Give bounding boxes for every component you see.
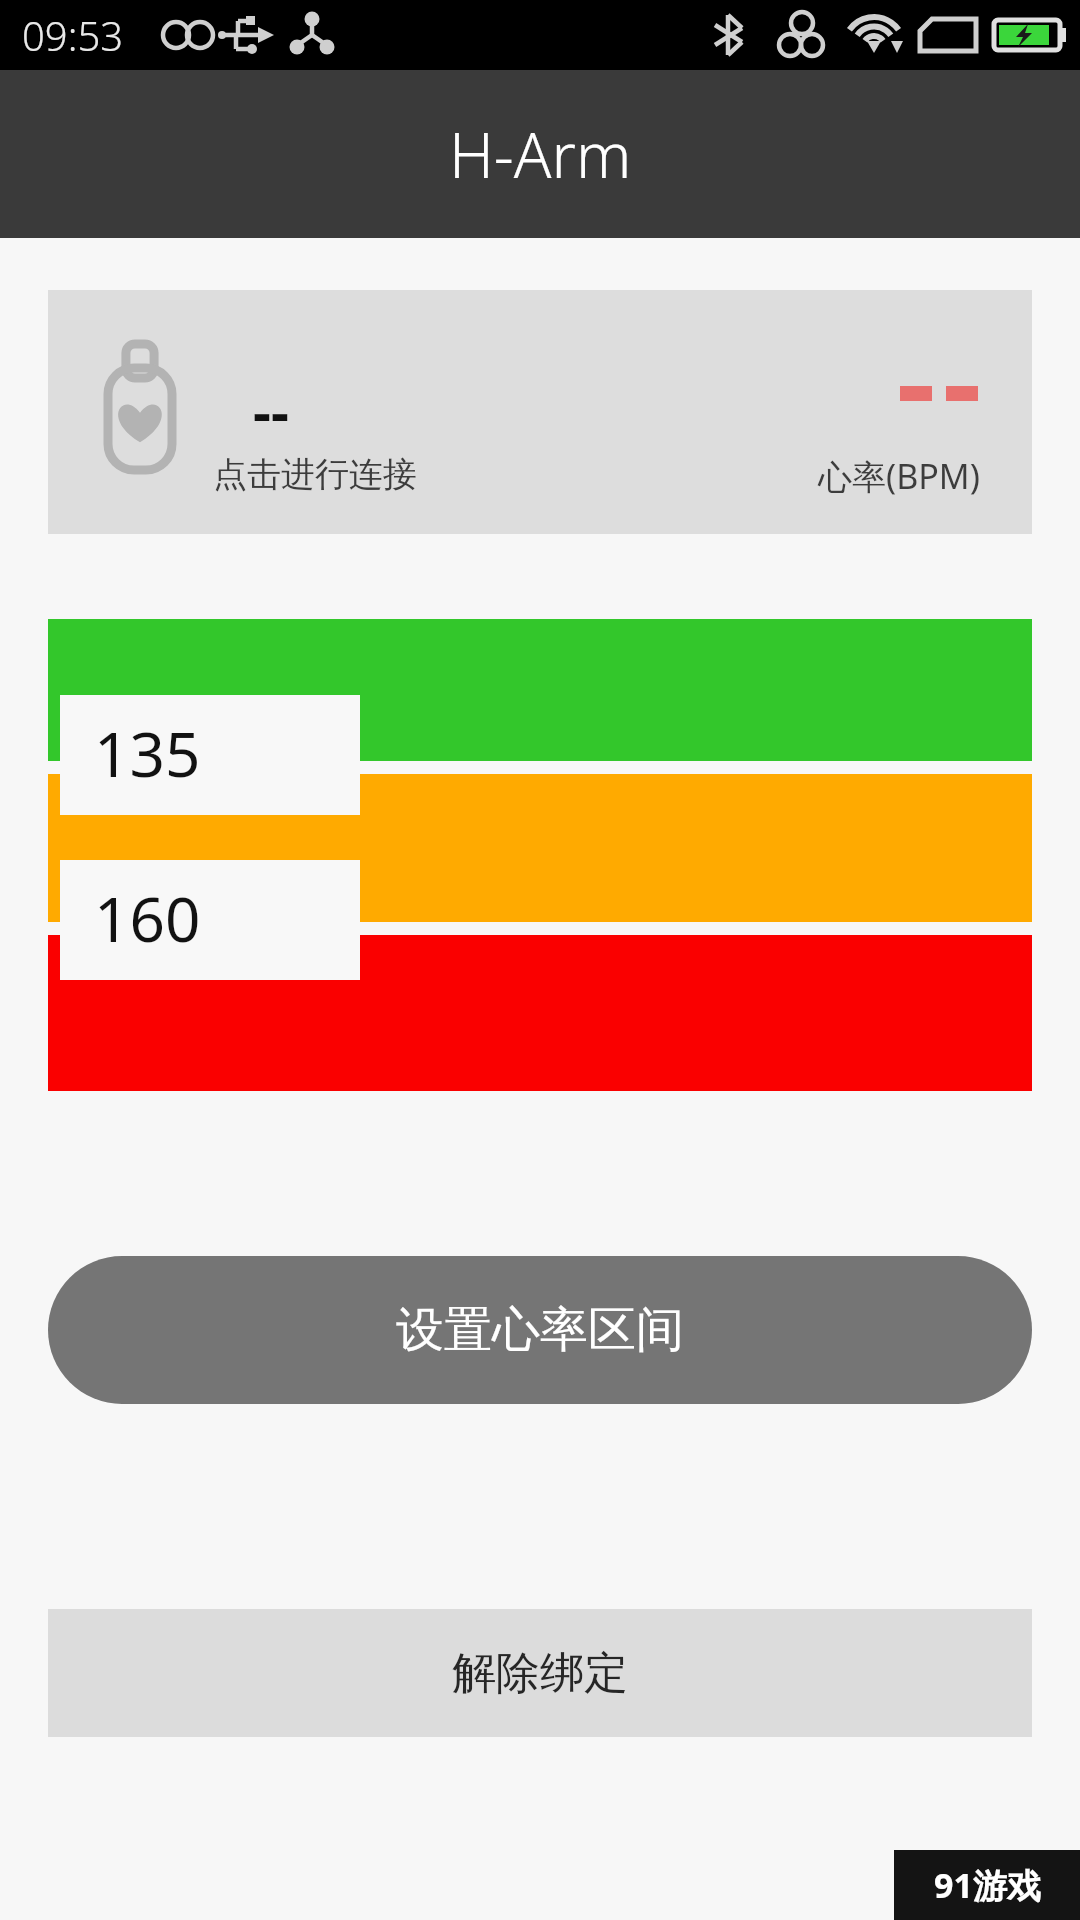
staticText: 09:53 (22, 8, 124, 62)
button[interactable]: 设置心率区间 (48, 1256, 1032, 1404)
button[interactable] (48, 774, 1032, 922)
button[interactable] (48, 935, 1032, 1091)
button[interactable]: 解除绑定 (48, 1609, 1032, 1737)
staticText: 解除绑定 (452, 1646, 628, 1701)
staticText: 设置心率区间 (396, 1300, 684, 1360)
staticText: 135 (94, 711, 201, 795)
button[interactable] (48, 619, 1032, 761)
staticText: -- (253, 372, 289, 448)
button[interactable]: 160 (60, 860, 360, 980)
staticText: 心率(BPM) (818, 453, 980, 499)
button[interactable]: -- (48, 290, 1032, 534)
staticText: 160 (94, 876, 201, 960)
button[interactable]: 135 (60, 695, 360, 815)
staticText: H-Arm (449, 112, 632, 196)
staticText: 91游戏 (934, 1862, 1041, 1908)
staticText: 点击进行连接 (213, 453, 417, 496)
